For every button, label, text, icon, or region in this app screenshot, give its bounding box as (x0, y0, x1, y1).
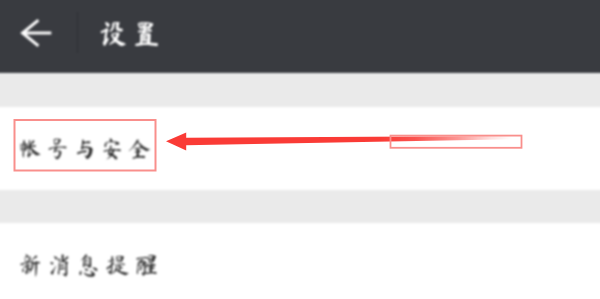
button[interactable]: 新 消 息 提 醒 (0, 223, 600, 299)
button[interactable]: 帐 号 与 安 全 (0, 107, 600, 190)
staticText: 新 消 息 提 醒 (18, 253, 159, 277)
staticText: 设 置 (99, 20, 161, 48)
button[interactable]: Back (14, 9, 62, 57)
staticText: 帐 号 与 安 全 (19, 137, 151, 160)
